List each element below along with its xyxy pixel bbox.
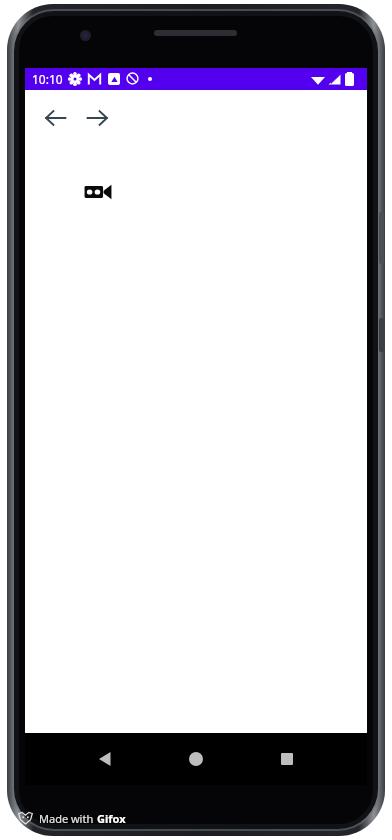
- button[interactable]: Back: [91, 745, 119, 773]
- button[interactable]: Recent apps: [273, 745, 301, 773]
- staticText: Made with: [39, 811, 97, 826]
- staticText: Gifox: [97, 811, 126, 826]
- staticText: 10:10: [32, 71, 63, 87]
- button[interactable]: Forward: [77, 98, 117, 138]
- button[interactable]: Back: [35, 98, 75, 138]
- button[interactable]: Home: [182, 745, 210, 773]
- button[interactable]: Video camera: [84, 182, 112, 202]
